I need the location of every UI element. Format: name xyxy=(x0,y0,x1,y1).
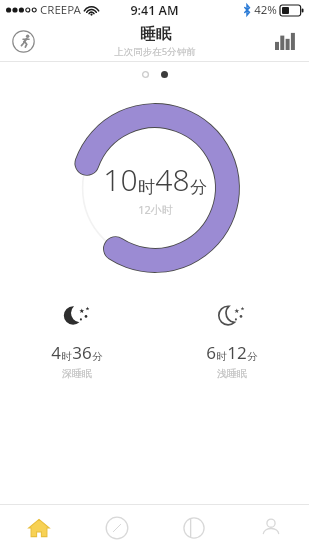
staticText: 10 xyxy=(103,159,138,200)
staticText: 深睡眠 xyxy=(62,367,92,380)
button[interactable]: 4 xyxy=(0,302,154,380)
staticText: 时 xyxy=(61,350,72,363)
staticText: 睡眠 xyxy=(140,24,171,44)
staticText: 48 xyxy=(155,159,190,200)
staticText: 42% xyxy=(254,2,277,18)
button[interactable]: Statistics xyxy=(266,22,304,60)
staticText: CREEPA xyxy=(40,2,81,18)
staticText: 9:41 AM xyxy=(130,2,179,19)
button[interactable]: Profile xyxy=(232,505,309,550)
staticText: 时 xyxy=(216,350,227,363)
button[interactable]: Home xyxy=(0,505,78,550)
button[interactable]: Explore xyxy=(78,505,155,550)
staticText: 分 xyxy=(247,350,258,363)
staticText: 时 xyxy=(138,177,155,198)
staticText: 分 xyxy=(190,177,207,198)
staticText: 12小时 xyxy=(138,202,173,217)
staticText: 4 xyxy=(51,341,61,364)
button[interactable]: Sleep xyxy=(155,505,232,550)
staticText: 浅睡眠 xyxy=(217,367,247,380)
staticText: 6 xyxy=(206,341,216,364)
staticText: 分 xyxy=(92,350,103,363)
staticText: 上次同步在5分钟前 xyxy=(114,45,196,58)
staticText: 36 xyxy=(72,341,92,364)
button[interactable]: Activity xyxy=(4,22,42,60)
button[interactable]: 6 xyxy=(154,302,309,380)
staticText: 12 xyxy=(227,341,247,364)
